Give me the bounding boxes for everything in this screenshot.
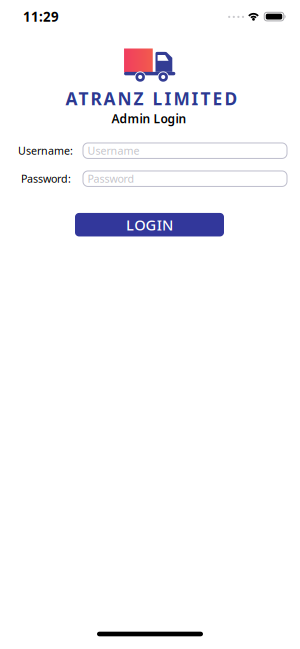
- button[interactable]: Username: [83, 143, 287, 158]
- button[interactable]: Password: [83, 171, 287, 186]
- staticText: Username: [87, 144, 139, 158]
- staticText: 11:29: [23, 8, 59, 25]
- staticText: Password:: [21, 172, 71, 186]
- staticText: Username:: [18, 144, 73, 158]
- staticText: ATRANZ LIMITED: [65, 87, 237, 110]
- staticText: Password: [87, 172, 134, 186]
- button[interactable]: LOGIN: [75, 213, 224, 236]
- staticText: Admin Login: [111, 110, 186, 126]
- staticText: LOGIN: [126, 215, 173, 234]
